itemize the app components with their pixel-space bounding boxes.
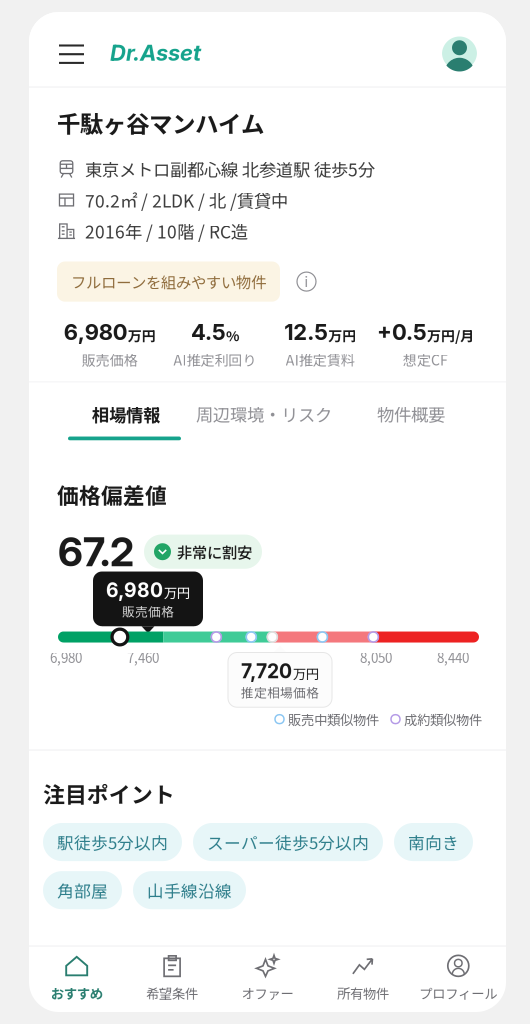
staticText: 希望条件	[146, 983, 198, 1003]
staticText: 駅徒歩5分以内	[57, 830, 168, 854]
button[interactable]: 希望条件	[124, 943, 220, 1015]
staticText: スーパー徒歩5分以内	[207, 830, 369, 854]
staticText: 67.2	[58, 527, 134, 576]
staticText: 万円	[328, 325, 356, 345]
staticText: 70.2㎡ / 2LDK / 北 /賃貸中	[85, 187, 288, 212]
staticText: 6,980	[106, 578, 163, 602]
staticText: 角部屋	[57, 878, 108, 902]
staticText: 想定CF	[403, 349, 448, 370]
staticText: 12.5	[284, 319, 328, 345]
button[interactable]: おすすめ	[29, 943, 124, 1015]
staticText: 万円/月	[427, 325, 474, 345]
button[interactable]: プロフィール	[411, 943, 506, 1015]
staticText: 4.5	[191, 319, 226, 345]
staticText: 千駄ヶ谷マンハイム	[57, 105, 264, 139]
staticText: おすすめ	[51, 983, 103, 1003]
staticText: 販売価格	[122, 602, 174, 620]
button[interactable]: 山手線沿線	[133, 871, 246, 909]
button[interactable]: Dr.Asset	[102, 29, 209, 76]
staticText: 南向き	[408, 830, 459, 854]
staticText: オファー	[241, 983, 293, 1003]
button[interactable]: スーパー徒歩5分以内	[193, 823, 383, 861]
staticText: プロフィール	[419, 983, 497, 1003]
staticText: フルローンを組みやすい物件	[71, 270, 266, 293]
staticText: Dr.Asset	[110, 39, 201, 66]
staticText: 2016年 / 10階 / RC造	[85, 218, 248, 243]
staticText: 7,460	[127, 647, 159, 667]
staticText: 山手線沿線	[147, 878, 232, 902]
staticText: 万円	[128, 325, 156, 345]
button[interactable]: Menu	[50, 30, 93, 78]
staticText: 価格偏差値	[57, 478, 167, 510]
staticText: AI推定賃料	[286, 349, 355, 370]
staticText: +0.5	[377, 319, 427, 345]
button[interactable]: 南向き	[394, 823, 473, 861]
staticText: 8,440	[437, 647, 469, 667]
button[interactable]: オファー	[220, 943, 315, 1015]
staticText: 所有物件	[337, 983, 389, 1003]
button[interactable]: 角部屋	[43, 871, 122, 909]
button[interactable]: 所有物件	[315, 943, 411, 1015]
button[interactable]: 物件概要	[365, 392, 457, 436]
staticText: 成約類似物件	[404, 709, 482, 729]
staticText: 6,980	[64, 319, 128, 345]
staticText: 8,050	[360, 647, 392, 667]
staticText: 周辺環境・リスク	[196, 401, 332, 427]
staticText: AI推定利回り	[173, 349, 256, 370]
button[interactable]: 周辺環境・リスク	[184, 392, 344, 436]
staticText: 販売価格	[82, 349, 138, 370]
staticText: i	[304, 273, 308, 290]
staticText: 万円	[164, 583, 190, 602]
staticText: 注目ポイント	[43, 777, 175, 809]
button[interactable]: 駅徒歩5分以内	[43, 823, 182, 861]
staticText: %	[226, 325, 239, 345]
staticText: 万円	[293, 664, 319, 683]
staticText: 販売中類似物件	[288, 709, 379, 729]
button[interactable]: Profile	[434, 28, 485, 79]
staticText: 7,720	[241, 659, 292, 683]
staticText: 物件概要	[377, 401, 445, 427]
staticText: 東京メトロ副都心線 北参道駅 徒歩5分	[85, 156, 375, 181]
staticText: 6,980	[50, 647, 82, 667]
staticText: 推定相場価格	[241, 683, 319, 701]
button[interactable]: Info	[294, 269, 319, 294]
button[interactable]: 相場情報	[80, 392, 172, 436]
staticText: 相場情報	[92, 401, 160, 427]
staticText: 非常に割安	[177, 541, 252, 563]
